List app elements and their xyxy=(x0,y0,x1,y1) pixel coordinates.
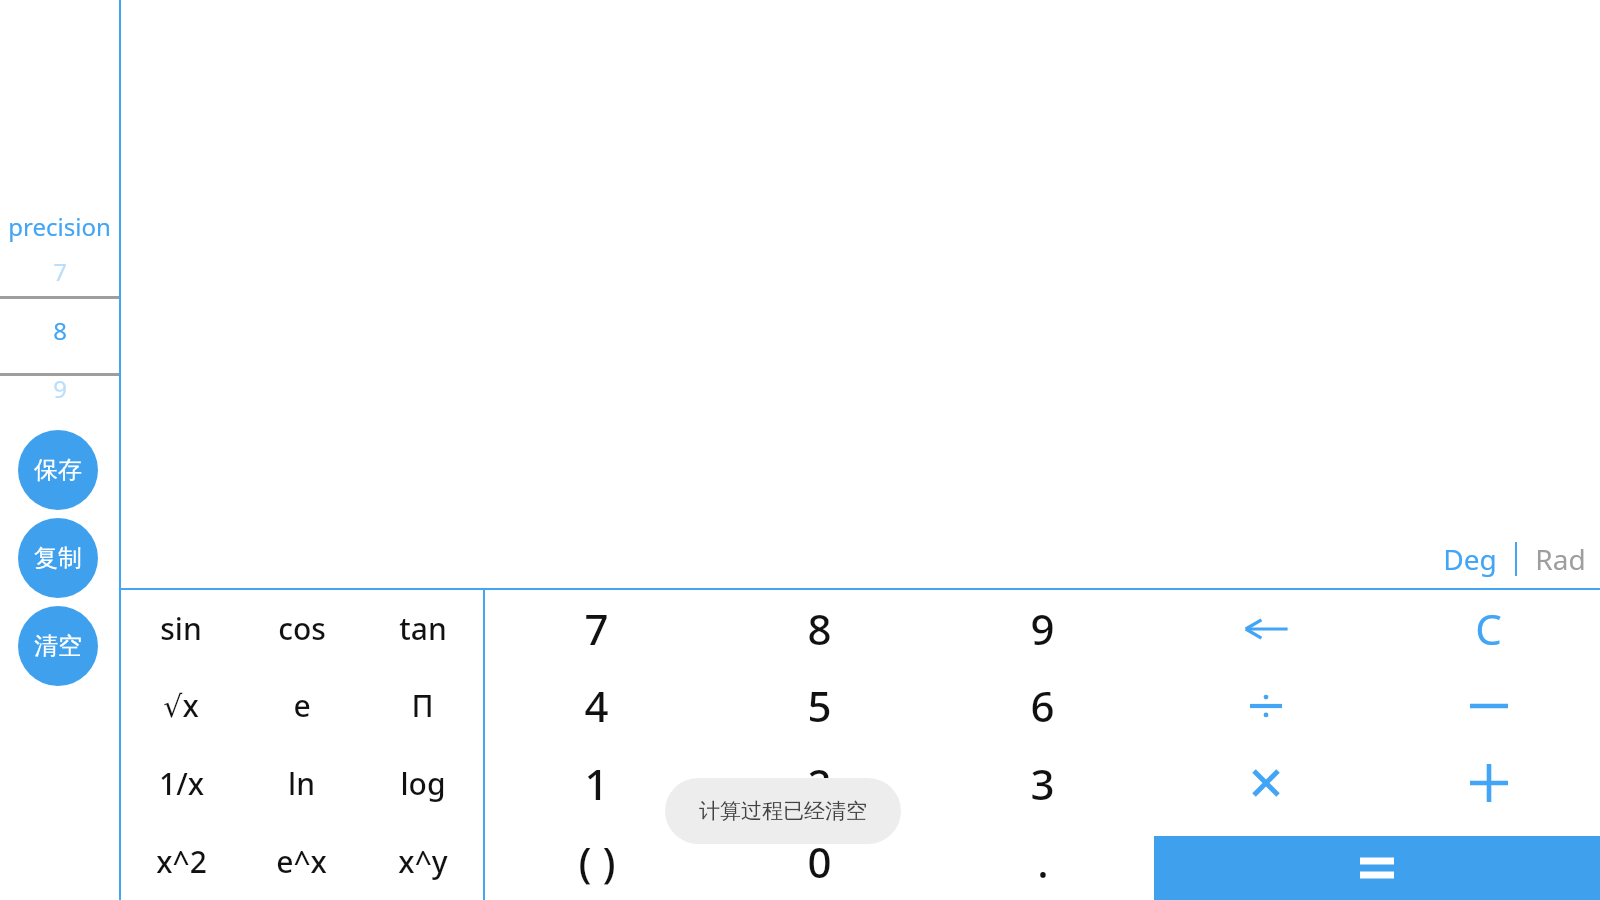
staticText: 6 xyxy=(1030,677,1055,734)
staticText: e xyxy=(293,685,311,726)
button[interactable]: 2 xyxy=(708,744,931,822)
staticText: 9 xyxy=(53,372,67,405)
button[interactable]: precision xyxy=(0,207,119,245)
button[interactable]: 0 xyxy=(708,822,931,900)
button[interactable]: e^x xyxy=(241,822,362,900)
staticText: . xyxy=(1037,833,1049,890)
staticText: ln xyxy=(288,763,315,804)
staticText: 5 xyxy=(807,677,832,734)
button[interactable]: C xyxy=(1377,590,1600,667)
button[interactable]: 3 xyxy=(931,744,1154,822)
button[interactable]: 4 xyxy=(485,667,708,744)
staticText: 9 xyxy=(1030,600,1055,657)
button[interactable]: 保存 xyxy=(18,430,98,510)
button[interactable]: 9 xyxy=(931,590,1154,667)
button[interactable]: cos xyxy=(241,590,362,667)
button[interactable]: Π xyxy=(362,667,483,744)
staticText: 7 xyxy=(53,255,67,288)
button[interactable]: 复制 xyxy=(18,518,98,598)
staticText: x^y xyxy=(398,841,448,882)
staticText: 1 xyxy=(584,755,609,812)
button[interactable]: Deg xyxy=(1425,534,1515,584)
button[interactable]: Multiply xyxy=(1154,744,1377,822)
staticText: 8 xyxy=(807,600,832,657)
button[interactable]: 7 xyxy=(485,590,708,667)
staticText: e^x xyxy=(276,841,327,882)
button[interactable]: 清空 xyxy=(18,606,98,686)
button[interactable]: tan xyxy=(362,590,483,667)
staticText: precision xyxy=(8,210,111,243)
staticText: 复制 xyxy=(34,543,82,573)
button[interactable]: Divide xyxy=(1154,667,1377,744)
button[interactable]: 6 xyxy=(931,667,1154,744)
button[interactable]: Backspace xyxy=(1154,590,1377,667)
button[interactable]: 8 xyxy=(708,590,931,667)
button[interactable]: e xyxy=(241,667,362,744)
button[interactable]: 8 xyxy=(0,311,119,350)
button[interactable]: . xyxy=(931,822,1154,900)
button[interactable]: ( ) xyxy=(485,822,708,900)
button[interactable]: x^y xyxy=(362,822,483,900)
staticText: 1/x xyxy=(159,763,204,804)
staticText: cos xyxy=(278,608,326,649)
staticText: tan xyxy=(399,608,447,649)
button[interactable]: √x xyxy=(121,667,241,744)
staticText: 4 xyxy=(584,677,609,734)
staticText: 清空 xyxy=(34,631,82,661)
button[interactable]: sin xyxy=(121,590,241,667)
staticText: Π xyxy=(411,685,434,726)
staticText: 2 xyxy=(807,755,832,812)
button[interactable]: x^2 xyxy=(121,822,241,900)
button[interactable]: Minus xyxy=(1377,667,1600,744)
button[interactable]: Plus xyxy=(1377,744,1600,822)
staticText: 8 xyxy=(53,314,67,347)
staticText: C xyxy=(1475,600,1502,657)
staticText: √x xyxy=(163,685,199,726)
staticText: 计算过程已经清空 xyxy=(699,798,867,824)
button[interactable]: Equals xyxy=(1154,836,1600,900)
button[interactable]: 1 xyxy=(485,744,708,822)
button[interactable]: ln xyxy=(241,744,362,822)
staticText: x^2 xyxy=(156,841,207,882)
staticText: ( ) xyxy=(578,833,616,890)
button[interactable]: 1/x xyxy=(121,744,241,822)
button[interactable]: 5 xyxy=(708,667,931,744)
staticText: 保存 xyxy=(34,455,82,485)
staticText: 3 xyxy=(1030,755,1055,812)
staticText: 0 xyxy=(807,833,832,890)
staticText: log xyxy=(400,763,446,804)
staticText: 7 xyxy=(584,600,609,657)
staticText: Rad xyxy=(1535,540,1586,578)
staticText: sin xyxy=(160,608,202,649)
button[interactable]: Rad xyxy=(1517,534,1600,584)
staticText: Deg xyxy=(1443,540,1497,578)
button[interactable]: log xyxy=(362,744,483,822)
